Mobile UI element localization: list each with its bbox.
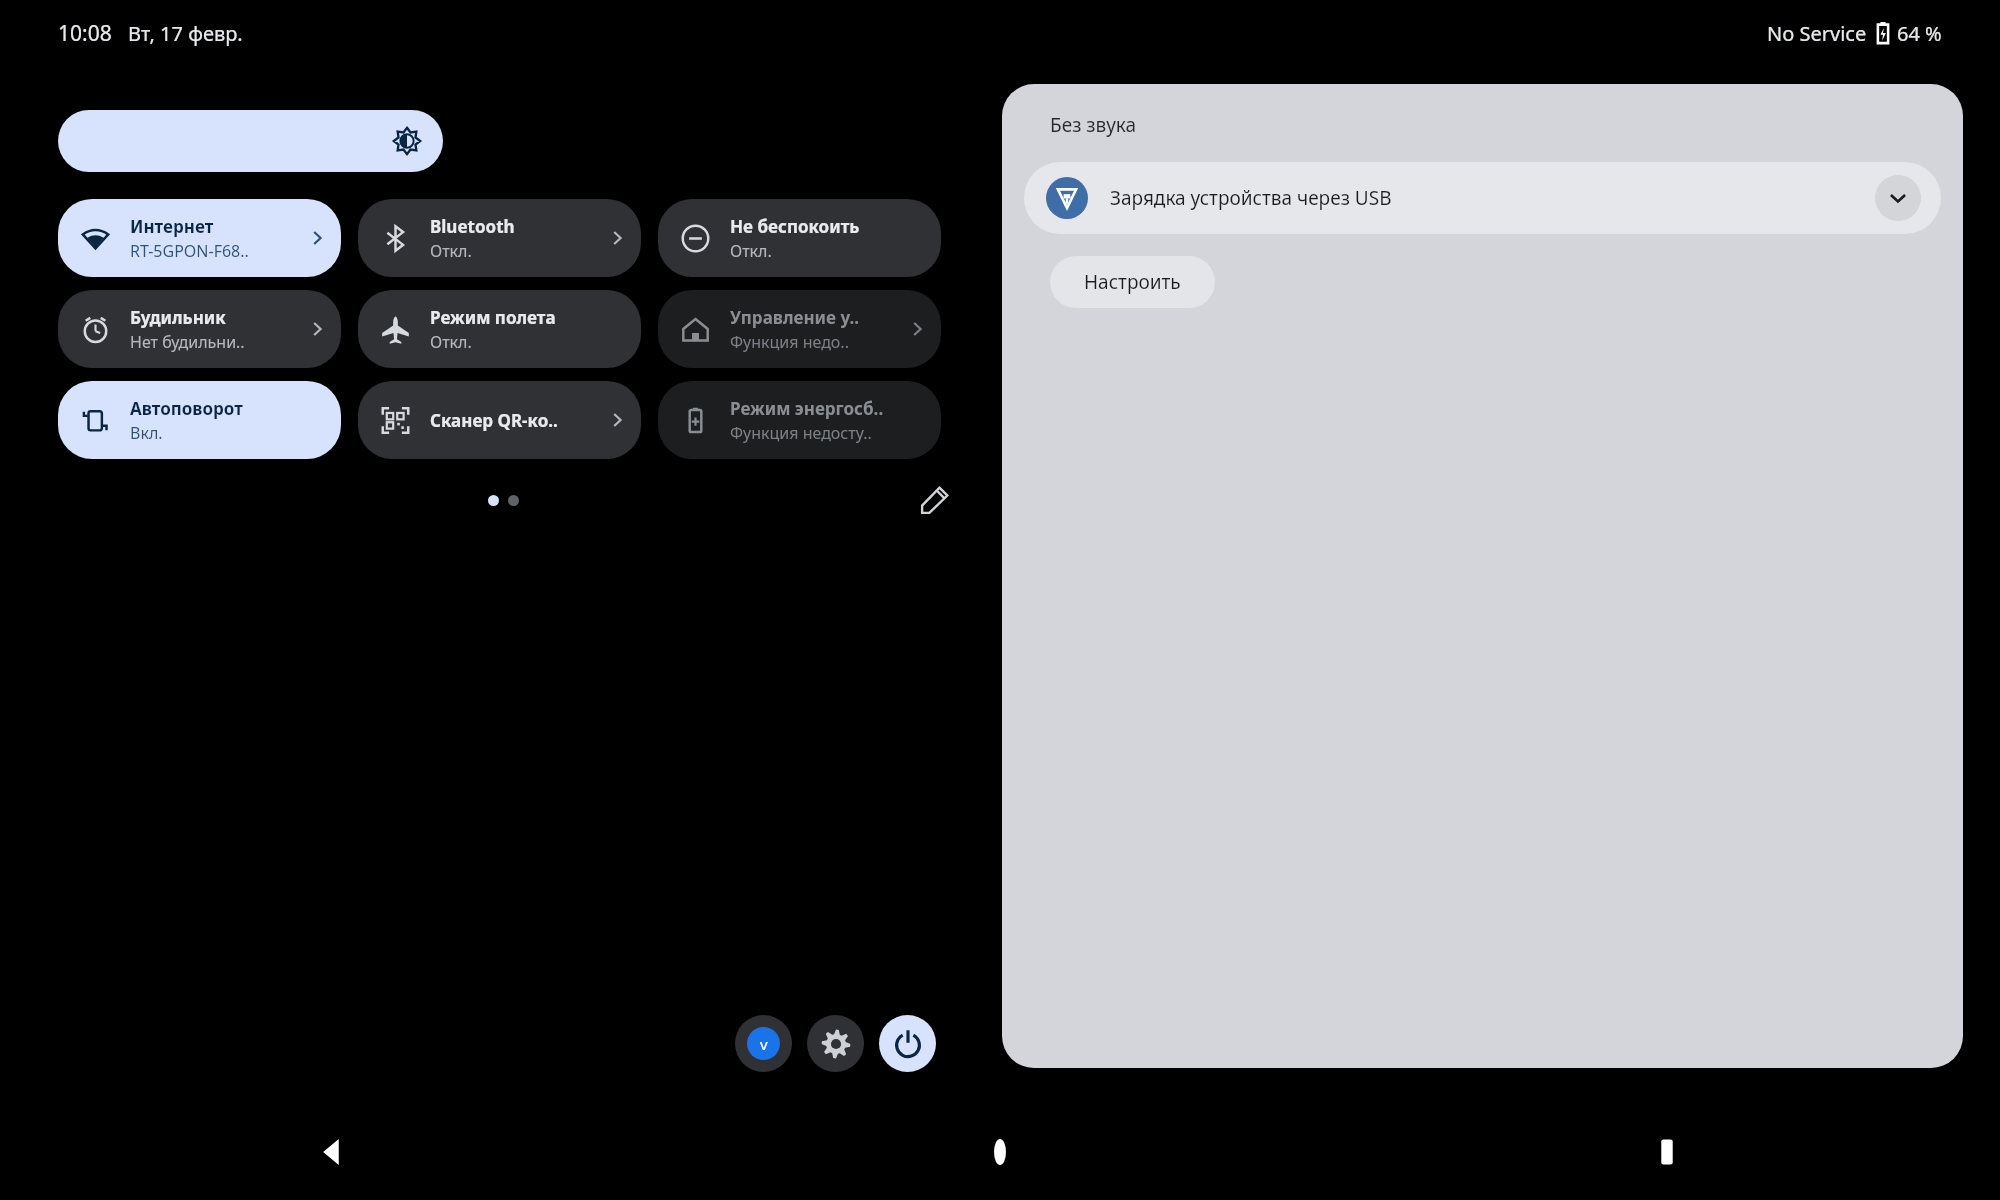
button[interactable]: Режим энергосб.. <box>658 381 941 459</box>
button[interactable]: Settings <box>807 1015 864 1072</box>
button[interactable]: Сканер QR-ко.. <box>358 381 641 459</box>
button[interactable]: Home <box>965 1117 1035 1187</box>
staticText: 10:08 <box>58 19 112 48</box>
button[interactable]: Интернет <box>58 199 341 277</box>
staticText: Не беспокоить <box>730 215 860 238</box>
staticText: Режим энергосб.. <box>730 397 884 420</box>
staticText: RT-5GPON-F68.. <box>130 240 249 262</box>
staticText: Без звука <box>1050 112 1137 138</box>
staticText: 64 % <box>1897 20 1942 47</box>
staticText: Функция недосту.. <box>730 422 872 444</box>
button[interactable]: Режим полета <box>358 290 641 368</box>
staticText: Будильник <box>130 306 226 329</box>
staticText: Управление у.. <box>730 306 859 329</box>
button[interactable]: Управление у.. <box>658 290 941 368</box>
staticText: Зарядка устройства через USB <box>1110 185 1392 211</box>
staticText: v <box>760 1034 768 1054</box>
staticText: Настроить <box>1084 269 1181 295</box>
button[interactable]: Back <box>298 1117 368 1187</box>
staticText: Откл. <box>430 240 472 262</box>
staticText: Вкл. <box>130 422 163 444</box>
button[interactable]: Автоповорот <box>58 381 341 459</box>
staticText: Интернет <box>130 215 214 238</box>
button[interactable]: Power <box>879 1015 936 1072</box>
staticText: Откл. <box>730 240 772 262</box>
button[interactable]: User <box>735 1015 792 1072</box>
staticText: Автоповорот <box>130 397 243 420</box>
staticText: No Service <box>1767 20 1867 47</box>
staticText: Функция недо.. <box>730 331 849 353</box>
button[interactable]: Recents <box>1632 1117 1702 1187</box>
button[interactable]: Expand <box>1875 175 1921 221</box>
button[interactable]: Brightness <box>58 110 443 172</box>
button[interactable]: Bluetooth <box>358 199 641 277</box>
staticText: Откл. <box>430 331 472 353</box>
button[interactable]: Edit tiles <box>912 477 958 523</box>
button[interactable]: Будильник <box>58 290 341 368</box>
button[interactable]: Не беспокоить <box>658 199 941 277</box>
button[interactable]: Настроить <box>1050 256 1215 308</box>
staticText: Сканер QR-ко.. <box>430 409 558 432</box>
staticText: Bluetooth <box>430 215 515 238</box>
staticText: Нет будильни.. <box>130 331 245 353</box>
staticText: Режим полета <box>430 306 556 329</box>
staticText: Вт, 17 февр. <box>128 20 243 47</box>
button[interactable]: Зарядка устройства через USB <box>1024 162 1941 234</box>
